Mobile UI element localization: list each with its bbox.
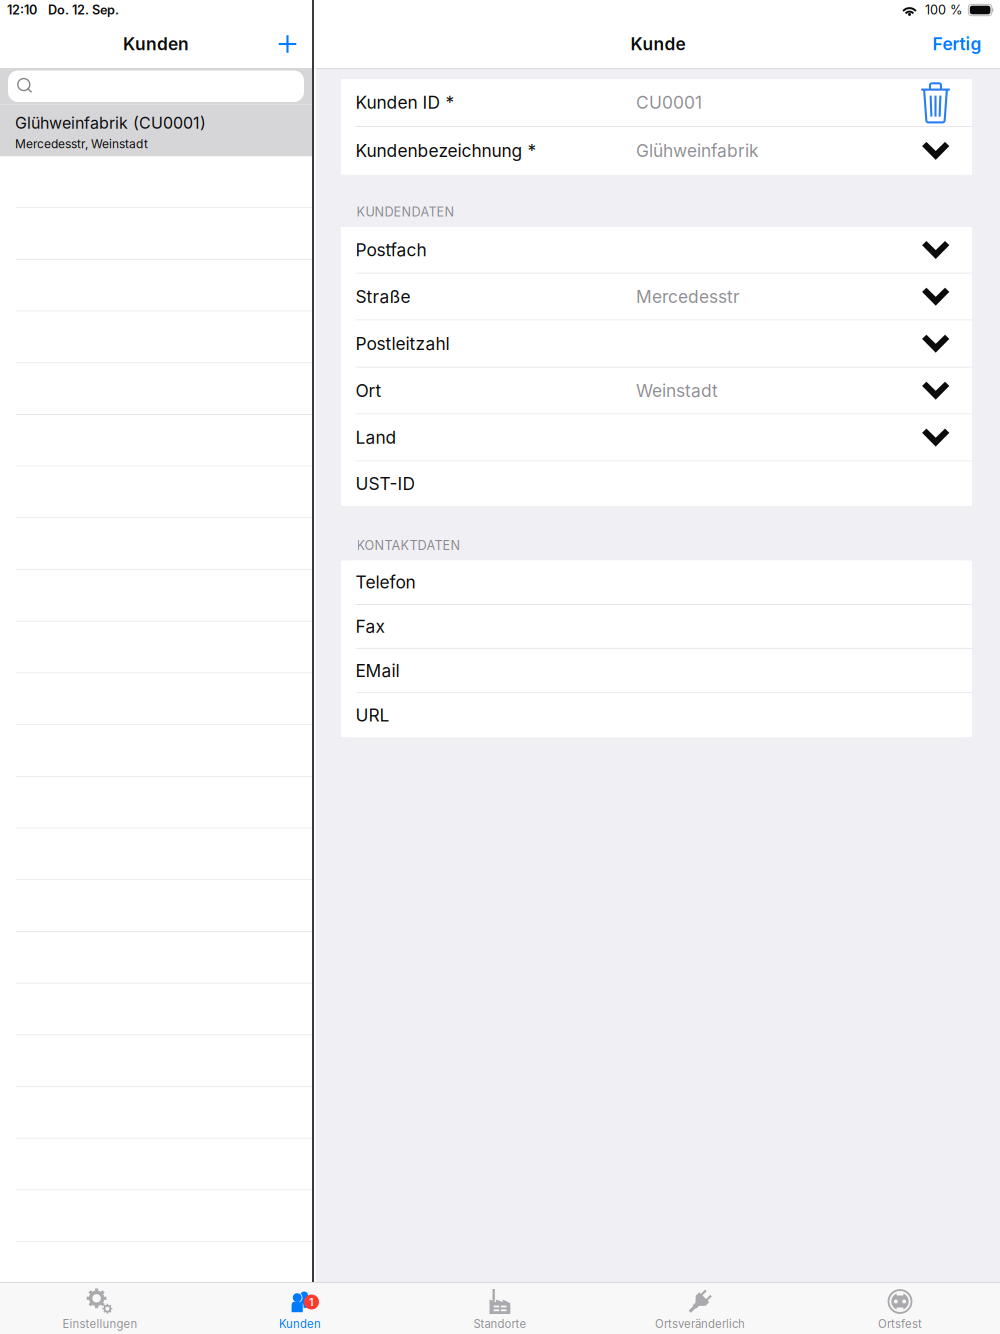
staticText: KUNDENDATEN bbox=[356, 204, 454, 220]
staticText: UST-ID bbox=[355, 473, 415, 494]
staticText: EMail bbox=[355, 660, 399, 681]
staticText: URL bbox=[355, 705, 389, 726]
button[interactable]: URL bbox=[341, 693, 972, 737]
button[interactable]: Land bbox=[341, 414, 972, 461]
button[interactable]: Standorte bbox=[400, 1283, 600, 1334]
button[interactable]: EMail bbox=[341, 649, 972, 693]
staticText: Kunden bbox=[279, 1317, 321, 1331]
button[interactable]: Fertig bbox=[917, 20, 997, 68]
staticText: CU0001 bbox=[636, 92, 702, 113]
staticText: Do. 12. Sep. bbox=[48, 2, 119, 18]
button[interactable]: UST-ID bbox=[341, 461, 972, 506]
button[interactable]: Glühweinfabrik (CU0001) bbox=[0, 104, 312, 156]
staticText: Standorte bbox=[473, 1317, 526, 1331]
button[interactable]: Straße bbox=[341, 274, 972, 320]
staticText: Kundenbezeichnung * bbox=[355, 140, 536, 161]
button[interactable]: Postleitzahl bbox=[341, 320, 972, 368]
button[interactable]: Neuer Kunde bbox=[265, 20, 309, 68]
staticText: Glühweinfabrik (CU0001) bbox=[15, 113, 206, 133]
staticText: Straße bbox=[355, 286, 410, 307]
staticText: 100 % bbox=[925, 2, 962, 18]
staticText: Kunde bbox=[630, 33, 685, 54]
staticText: Ortsfest bbox=[878, 1317, 922, 1331]
button[interactable]: Einstellungen bbox=[0, 1283, 200, 1334]
staticText: Glühweinfabrik bbox=[636, 140, 759, 161]
staticText: Fax bbox=[355, 616, 384, 637]
staticText: Weinstadt bbox=[636, 380, 718, 401]
staticText: Kunden ID * bbox=[355, 92, 454, 113]
staticText: Ortsveränderlich bbox=[655, 1317, 745, 1331]
button[interactable]: Kunden ID * bbox=[341, 79, 972, 127]
staticText: Land bbox=[355, 427, 396, 448]
staticText: KONTAKTDATEN bbox=[356, 538, 460, 553]
button[interactable]: Ortsveränderlich bbox=[600, 1283, 800, 1334]
button[interactable]: Ortsfest bbox=[800, 1283, 1000, 1334]
button[interactable]: Postfach bbox=[341, 227, 972, 274]
staticText: Kunden bbox=[123, 33, 189, 54]
staticText: Fertig bbox=[932, 33, 981, 54]
staticText: Postfach bbox=[355, 239, 426, 260]
staticText: Telefon bbox=[355, 572, 415, 593]
button[interactable]: Telefon bbox=[341, 560, 972, 605]
staticText: Einstellungen bbox=[62, 1317, 137, 1331]
staticText: Mercedesstr bbox=[636, 286, 740, 307]
staticText: 12:10 bbox=[7, 2, 37, 18]
button[interactable]: Kundenbezeichnung * bbox=[341, 127, 972, 175]
staticText: Postleitzahl bbox=[355, 333, 449, 354]
button[interactable]: 1 bbox=[200, 1283, 400, 1334]
staticText: 1 bbox=[309, 1295, 314, 1308]
button[interactable]: Ort bbox=[341, 368, 972, 414]
staticText: Ort bbox=[355, 380, 381, 401]
button[interactable]: Fax bbox=[341, 605, 972, 649]
staticText: Mercedesstr, Weinstadt bbox=[15, 137, 148, 151]
